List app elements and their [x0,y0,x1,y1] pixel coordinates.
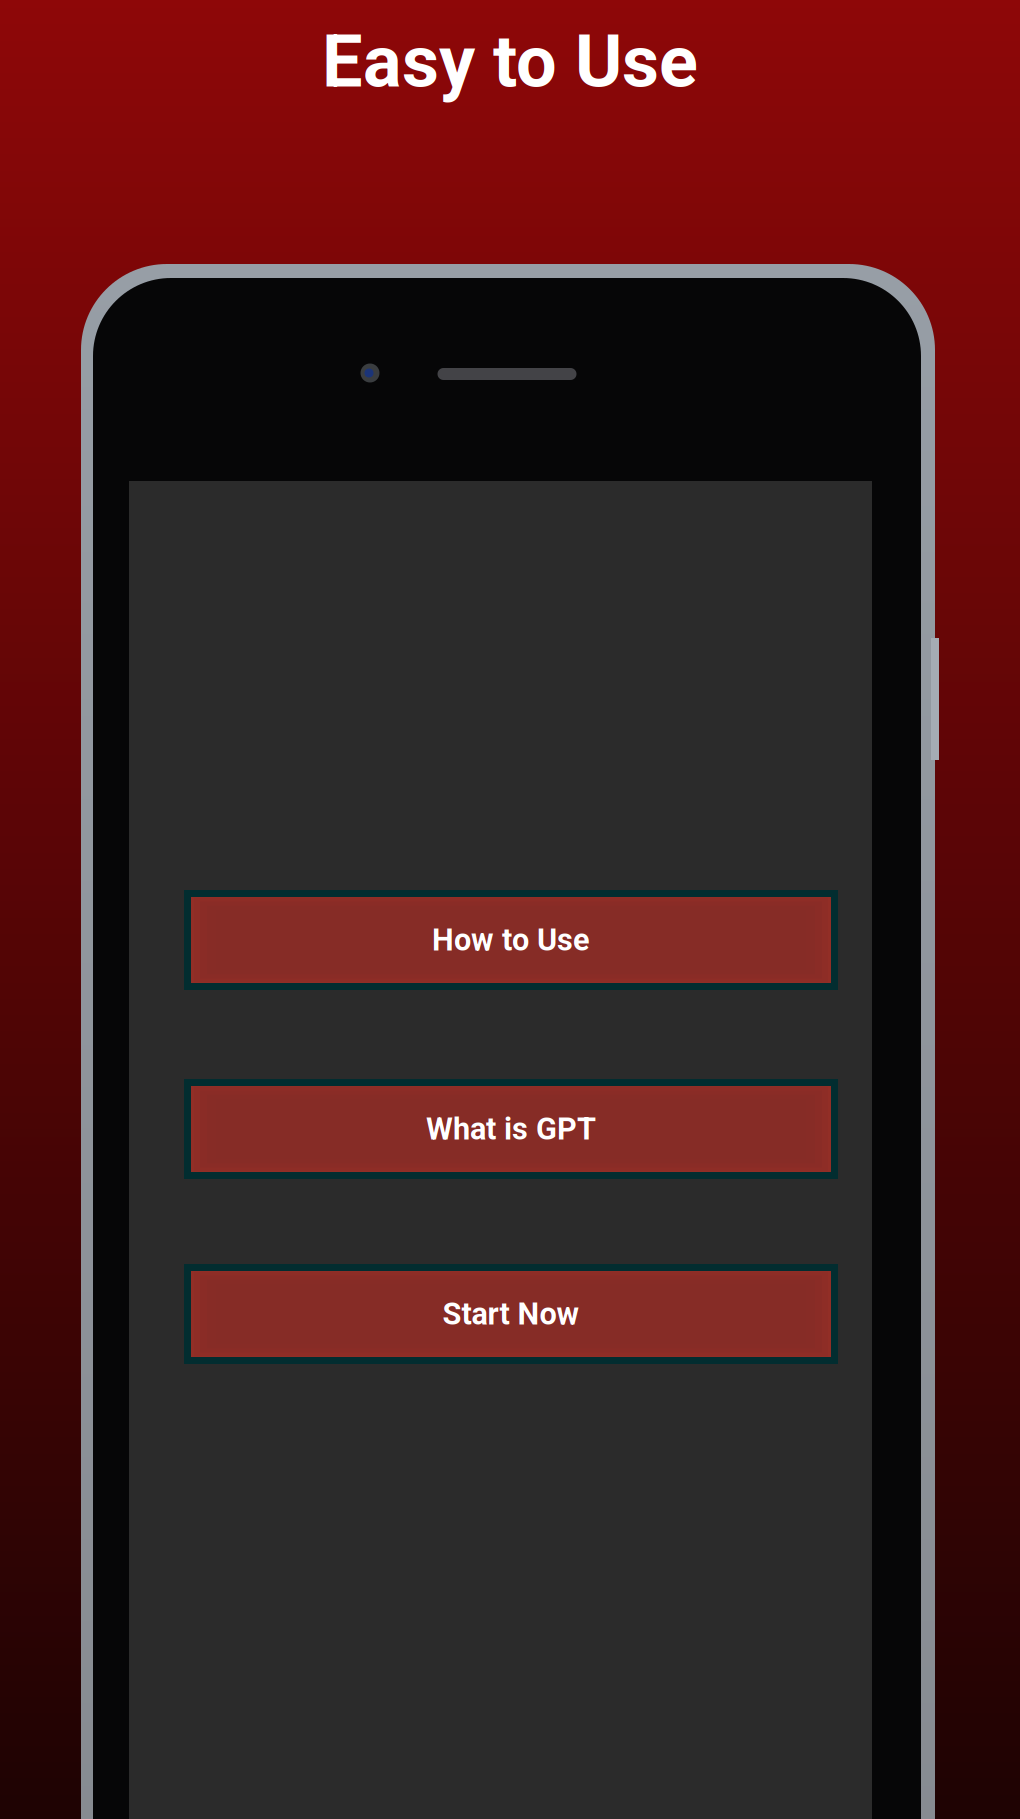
staticText: Easy to Use [322,20,698,104]
button[interactable]: How to Use [184,890,838,990]
staticText: What is GPT [426,1111,596,1147]
staticText: Start Now [442,1296,579,1332]
button[interactable]: What is GPT [184,1079,838,1179]
button[interactable]: Start Now [184,1264,838,1364]
staticText: How to Use [432,922,590,958]
